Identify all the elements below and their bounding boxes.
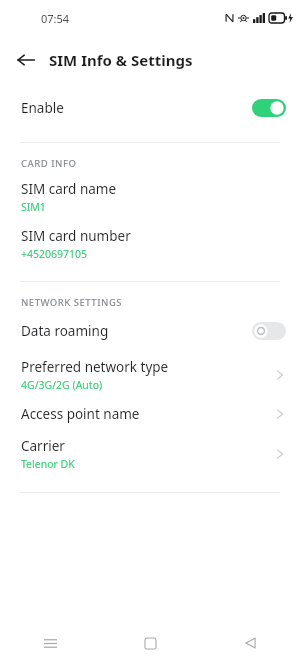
other: Off <box>252 322 286 340</box>
staticText: Carrier <box>21 437 65 455</box>
button[interactable]: Home <box>100 619 200 667</box>
button[interactable]: Recent apps <box>0 619 100 667</box>
staticText: Data roaming <box>21 322 252 340</box>
button[interactable]: Back <box>6 40 46 80</box>
button[interactable]: SIM card name <box>0 180 300 214</box>
button[interactable]: Carrier <box>0 437 300 471</box>
staticText: NETWORK SETTINGS <box>21 296 123 309</box>
button[interactable]: Data roaming <box>0 317 300 345</box>
staticText: 4G/3G/2G (Auto) <box>21 378 103 392</box>
button[interactable]: Access point name <box>0 405 300 423</box>
button[interactable]: Preferred network type <box>0 358 300 392</box>
button[interactable]: Back <box>200 619 300 667</box>
staticText: 07:54 <box>41 11 70 26</box>
staticText: Preferred network type <box>21 358 169 376</box>
staticText: SIM card name <box>21 180 117 198</box>
staticText: SIM Info & Settings <box>49 50 193 70</box>
button[interactable]: Enable <box>0 94 300 122</box>
staticText: CARD INFO <box>21 157 77 170</box>
staticText: SIM card number <box>21 227 131 245</box>
staticText: Access point name <box>21 405 140 423</box>
staticText: +4520697105 <box>21 247 88 261</box>
button[interactable]: SIM card number <box>0 227 300 261</box>
staticText: Enable <box>21 99 252 117</box>
staticText: Telenor DK <box>21 457 75 471</box>
other: On <box>252 99 286 117</box>
staticText: SIM1 <box>21 200 46 214</box>
